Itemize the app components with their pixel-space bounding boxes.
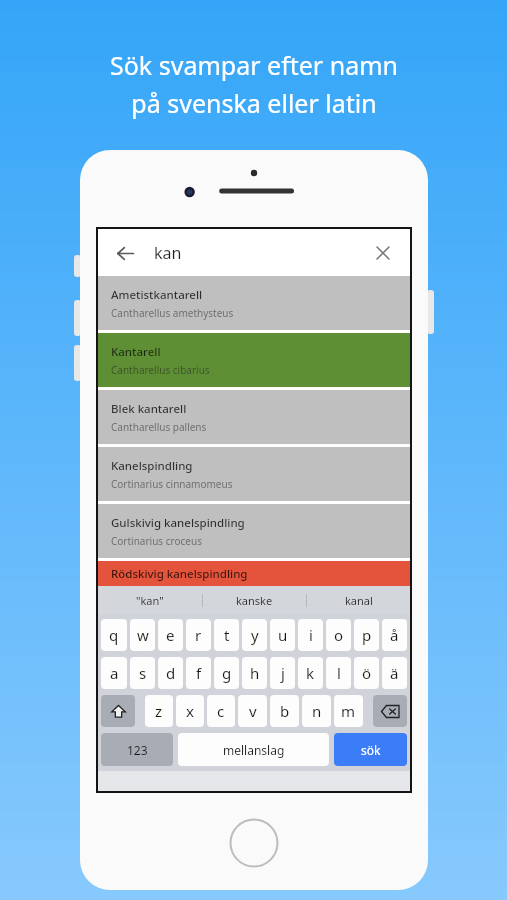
staticText: Rödskivig kanelspindling (111, 566, 248, 582)
button[interactable]: ä (382, 657, 407, 689)
button[interactable]: i (298, 619, 323, 651)
staticText: Blek kantarell (111, 401, 187, 417)
staticText: Gulskivig kanelspindling (111, 515, 245, 531)
button[interactable]: Clear search (366, 236, 400, 270)
button[interactable]: b (270, 695, 299, 727)
staticText: sök (361, 742, 381, 758)
staticText: e (166, 625, 175, 645)
staticText: "kan" (136, 593, 164, 608)
button[interactable]: Blek kantarell (98, 390, 410, 444)
button[interactable]: r (186, 619, 211, 651)
staticText: m (341, 701, 356, 721)
button[interactable]: j (270, 657, 295, 689)
button[interactable]: Gulskivig kanelspindling (98, 504, 410, 558)
staticText: x (186, 701, 194, 721)
staticText: v (249, 701, 257, 721)
button[interactable]: Shift (101, 695, 135, 727)
staticText: i (309, 625, 313, 645)
button[interactable]: q (101, 619, 127, 651)
button[interactable]: p (354, 619, 379, 651)
staticText: g (222, 663, 232, 683)
staticText: Cantharellus cibarius (111, 363, 210, 377)
staticText: z (155, 701, 163, 721)
staticText: n (312, 701, 322, 721)
button[interactable]: kanal (307, 586, 410, 614)
staticText: y (251, 625, 259, 645)
staticText: på svenska eller latin (131, 86, 377, 120)
staticText: Kantarell (111, 344, 161, 360)
button[interactable]: s (130, 657, 155, 689)
staticText: kan (154, 242, 182, 264)
staticText: w (137, 625, 149, 645)
staticText: a (110, 663, 119, 683)
staticText: o (334, 625, 344, 645)
button[interactable]: z (145, 695, 173, 727)
button[interactable]: kanske (203, 586, 306, 614)
staticText: p (362, 625, 372, 645)
button[interactable]: sök (334, 733, 407, 766)
button[interactable]: v (238, 695, 267, 727)
staticText: l (337, 663, 341, 683)
staticText: s (139, 663, 147, 683)
button[interactable]: Back (108, 236, 142, 270)
button[interactable]: h (242, 657, 267, 689)
staticText: Cantharellus pallens (111, 420, 207, 434)
staticText: t (224, 625, 230, 645)
staticText: Cortinarius cinnamomeus (111, 477, 233, 491)
staticText: kanal (345, 593, 373, 608)
staticText: 123 (127, 742, 148, 758)
staticText: mellanslag (223, 742, 285, 758)
staticText: Sök svampar efter namn (110, 48, 398, 82)
button[interactable]: o (326, 619, 351, 651)
button[interactable]: Ametistkantarell (98, 276, 410, 330)
button[interactable]: c (207, 695, 235, 727)
button[interactable]: ö (354, 657, 379, 689)
staticText: ä (390, 663, 399, 683)
button[interactable]: u (270, 619, 295, 651)
button[interactable]: d (158, 657, 183, 689)
button[interactable]: k (298, 657, 323, 689)
staticText: d (166, 663, 176, 683)
staticText: k (306, 663, 315, 683)
staticText: h (250, 663, 260, 683)
button[interactable]: Kantarell (98, 333, 410, 387)
staticText: Cortinarius croceus (111, 534, 202, 548)
staticText: f (196, 663, 202, 683)
button[interactable]: Home (229, 818, 279, 868)
button[interactable]: l (326, 657, 351, 689)
button[interactable]: 123 (101, 733, 173, 766)
staticText: ö (362, 663, 372, 683)
button[interactable]: n (302, 695, 331, 727)
staticText: Cantharellus amethysteus (111, 306, 234, 320)
button[interactable]: t (214, 619, 239, 651)
staticText: q (109, 625, 119, 645)
staticText: å (390, 625, 399, 645)
button[interactable]: x (176, 695, 204, 727)
button[interactable]: Rödskivig kanelspindling (98, 561, 410, 586)
staticText: Ametistkantarell (111, 287, 203, 303)
staticText: c (217, 701, 225, 721)
button[interactable]: m (334, 695, 363, 727)
button[interactable]: f (186, 657, 211, 689)
button[interactable]: Backspace (373, 695, 407, 727)
button[interactable]: Kanelspindling (98, 447, 410, 501)
button[interactable]: a (101, 657, 127, 689)
staticText: b (280, 701, 290, 721)
button[interactable]: y (242, 619, 267, 651)
staticText: Kanelspindling (111, 458, 193, 474)
button[interactable]: g (214, 657, 239, 689)
button[interactable]: e (158, 619, 183, 651)
button[interactable]: "kan" (98, 586, 202, 614)
button[interactable]: w (130, 619, 155, 651)
staticText: r (195, 625, 202, 645)
staticText: u (278, 625, 288, 645)
staticText: j (281, 663, 285, 683)
staticText: kanske (236, 593, 273, 608)
button[interactable]: å (382, 619, 407, 651)
button[interactable]: mellanslag (178, 733, 329, 766)
